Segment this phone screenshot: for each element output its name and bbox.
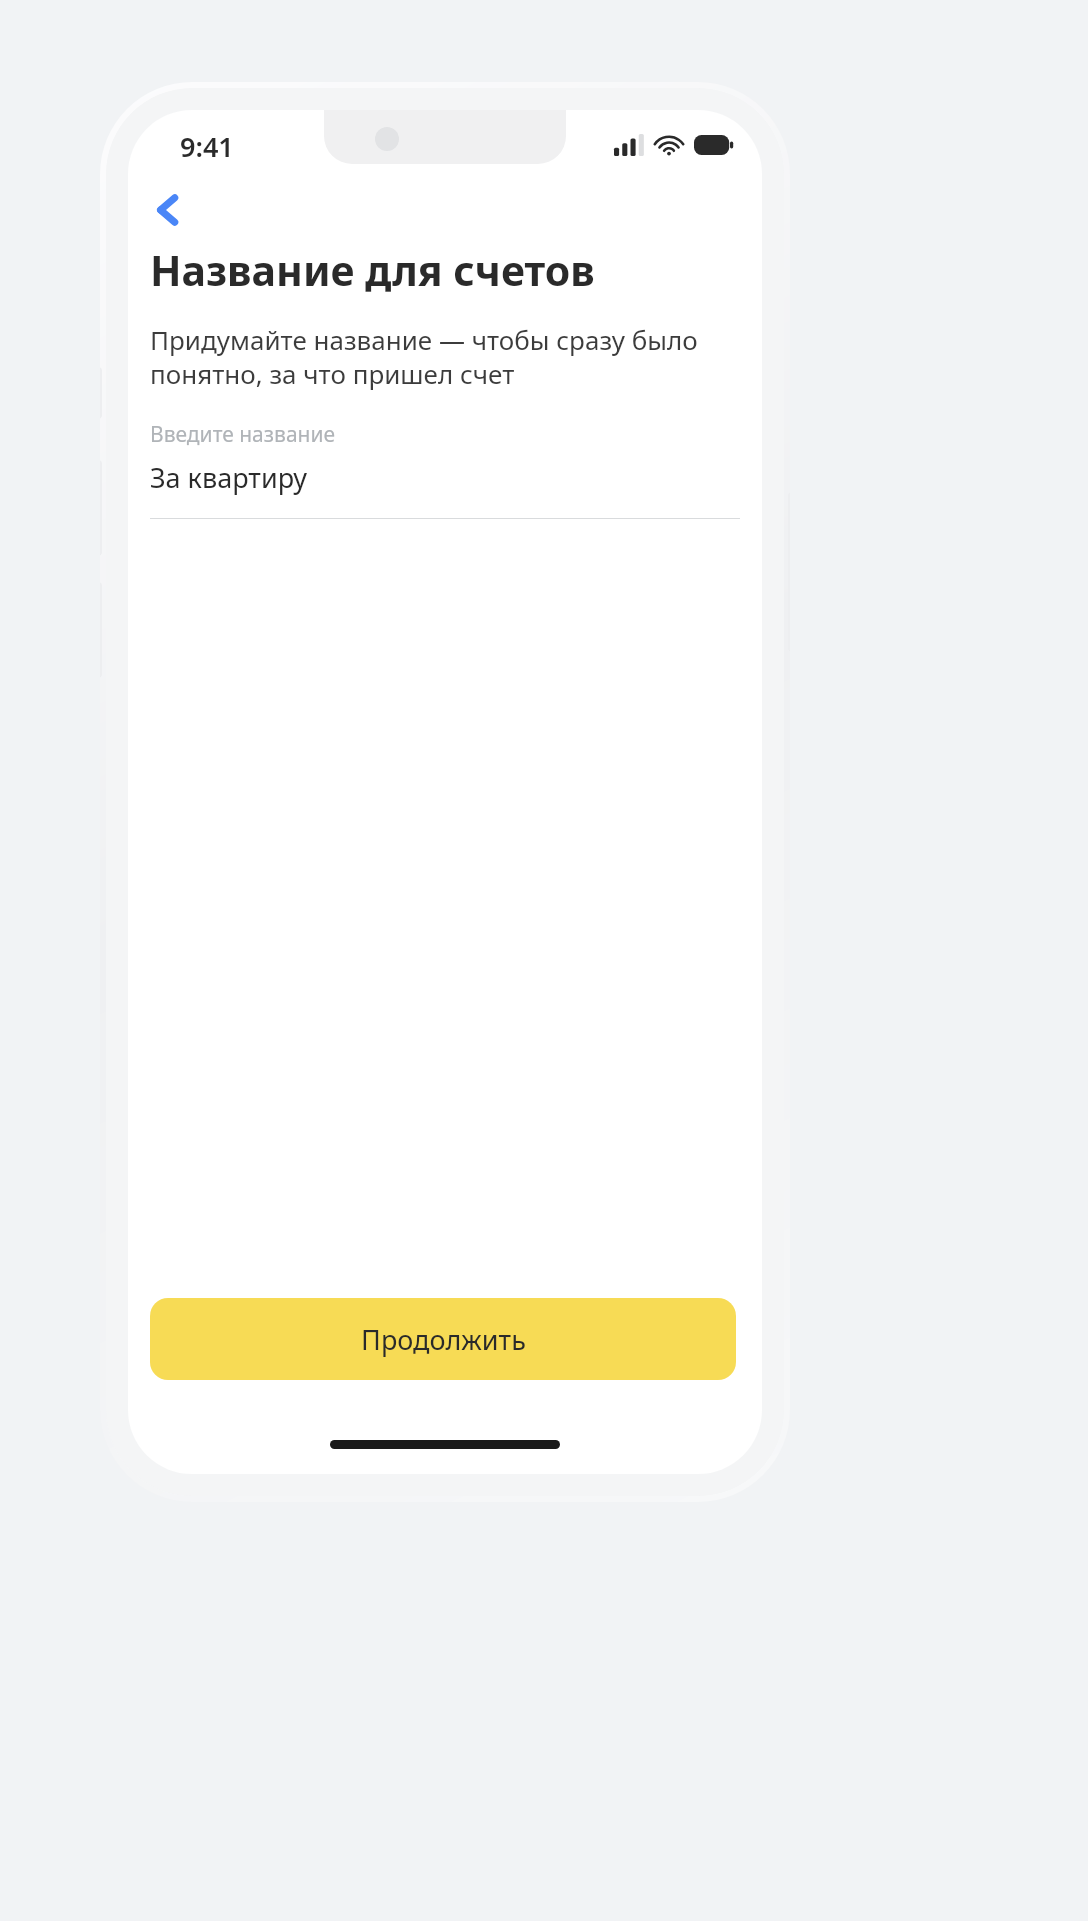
staticText: Продолжить <box>361 1321 526 1358</box>
button[interactable]: Продолжить <box>150 1298 736 1380</box>
staticText: За квартиру <box>150 459 308 496</box>
staticText: Придумайте название — чтобы сразу было п… <box>150 322 698 391</box>
staticText: 9:41 <box>180 128 234 165</box>
staticText: Название для счетов <box>150 242 595 298</box>
button[interactable]: Введите название <box>150 420 740 519</box>
staticText: Введите название <box>150 420 336 449</box>
button[interactable]: Назад <box>130 172 206 248</box>
